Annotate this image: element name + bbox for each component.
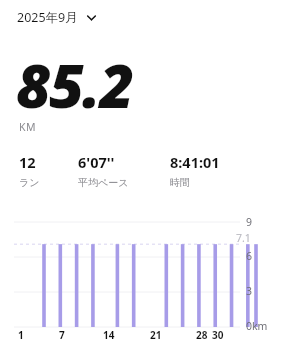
staticText: 9	[246, 215, 253, 229]
staticText: 平均ペース	[78, 176, 129, 189]
button[interactable]: 8:41:01	[170, 152, 220, 189]
staticText: ラン	[19, 176, 40, 189]
staticText: 7.1	[236, 231, 251, 245]
staticText: 8:41:01	[170, 152, 220, 172]
staticText: KM	[19, 120, 37, 134]
staticText: 21	[150, 328, 162, 342]
staticText: 30	[212, 328, 224, 342]
staticText: 85.2	[16, 44, 133, 126]
button[interactable]: Select month 2025年9月	[14, 6, 100, 29]
staticText: 7	[59, 328, 65, 342]
staticText: 28	[196, 328, 208, 342]
staticText: 1	[18, 328, 24, 342]
staticText: 14	[103, 328, 115, 342]
staticText: 0km	[246, 319, 268, 333]
staticText: 6	[246, 249, 253, 263]
staticText: 6'07''	[78, 152, 115, 172]
staticText: 2025年9月	[17, 9, 78, 26]
staticText: 時間	[170, 176, 190, 189]
button[interactable]: 6'07''	[78, 152, 129, 189]
staticText: 3	[246, 284, 253, 298]
staticText: 12	[19, 152, 36, 172]
button[interactable]: 12	[19, 152, 40, 189]
